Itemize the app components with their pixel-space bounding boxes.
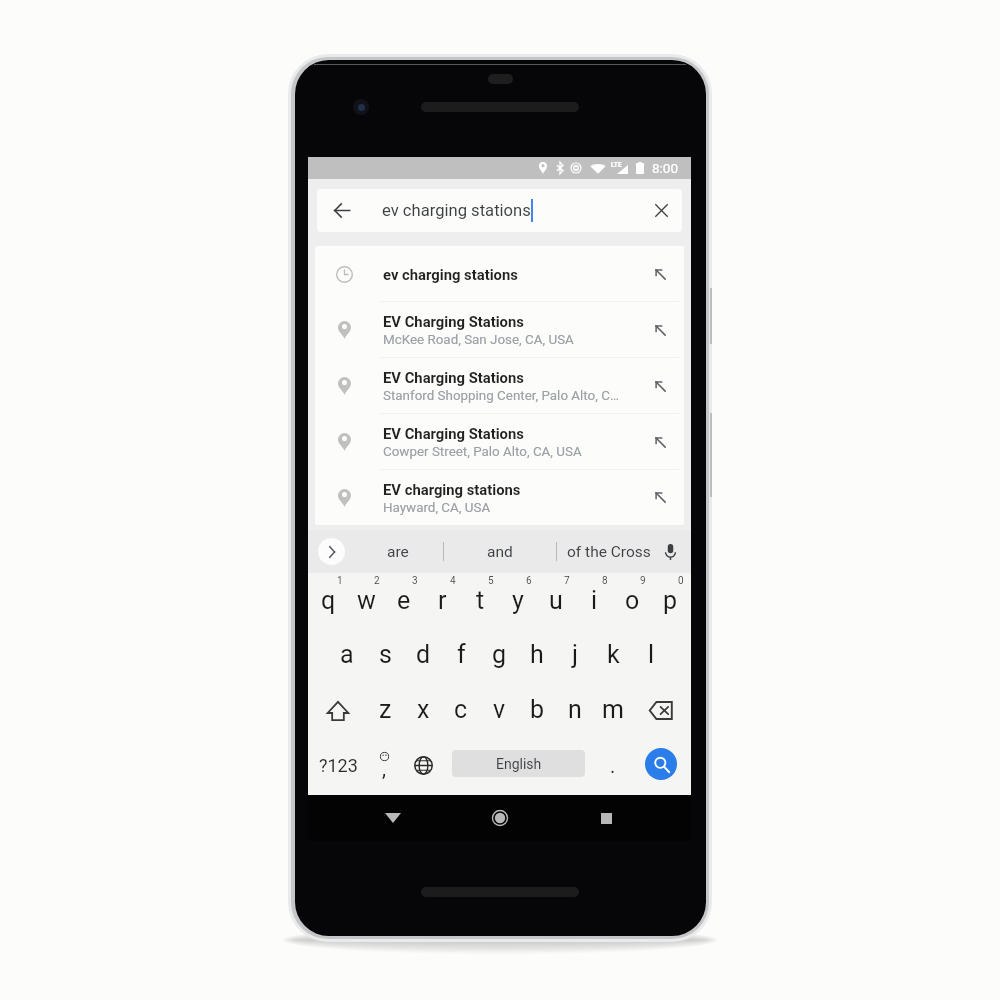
button[interactable]: 4 bbox=[423, 573, 461, 628]
button[interactable]: c bbox=[442, 684, 480, 739]
button[interactable]: 5 bbox=[461, 573, 499, 628]
staticText: l bbox=[648, 640, 655, 669]
button[interactable]: f bbox=[442, 628, 480, 683]
staticText: . bbox=[610, 754, 616, 777]
staticText: t bbox=[476, 586, 485, 615]
staticText: a bbox=[340, 640, 354, 669]
button[interactable]: ?123 bbox=[310, 739, 366, 789]
button[interactable]: of the Cross bbox=[557, 530, 661, 573]
staticText: x bbox=[417, 695, 430, 724]
staticText: 0 bbox=[678, 575, 684, 587]
staticText: i bbox=[591, 586, 598, 615]
staticText: u bbox=[549, 586, 563, 615]
button[interactable]: g bbox=[480, 628, 518, 683]
staticText: 2 bbox=[374, 575, 380, 587]
button[interactable]: x bbox=[404, 684, 442, 739]
button[interactable]: 0 bbox=[651, 573, 689, 628]
staticText: Cowper Street, Palo Alto, CA, USA bbox=[383, 444, 582, 460]
staticText: and bbox=[487, 543, 513, 561]
staticText: EV Charging Stations bbox=[383, 313, 524, 330]
staticText: EV Charging Stations bbox=[383, 369, 524, 386]
button[interactable]: s bbox=[366, 628, 404, 683]
button[interactable]: b bbox=[518, 684, 556, 739]
button[interactable]: n bbox=[556, 684, 594, 739]
staticText: j bbox=[572, 640, 578, 669]
button[interactable]: v bbox=[480, 684, 518, 739]
staticText: f bbox=[457, 640, 466, 669]
staticText: McKee Road, San Jose, CA, USA bbox=[383, 332, 574, 348]
button[interactable]: h bbox=[518, 628, 556, 683]
staticText: m bbox=[602, 695, 624, 724]
button[interactable]: Home bbox=[479, 795, 521, 841]
button[interactable]: Recent apps bbox=[585, 795, 627, 841]
button[interactable]: Back bbox=[372, 795, 414, 841]
staticText: Hayward, CA, USA bbox=[383, 500, 491, 516]
staticText: 8:00 bbox=[652, 160, 679, 176]
button[interactable]: 1 bbox=[310, 573, 347, 628]
button[interactable]: ev charging stations bbox=[315, 246, 684, 302]
staticText: o bbox=[625, 586, 640, 615]
staticText: LTE bbox=[611, 161, 622, 169]
button[interactable]: . bbox=[596, 739, 630, 789]
staticText: w bbox=[357, 586, 376, 615]
button[interactable]: Voice input bbox=[655, 530, 685, 573]
staticText: ?123 bbox=[319, 755, 358, 776]
staticText: 1 bbox=[337, 575, 343, 587]
staticText: g bbox=[492, 640, 507, 669]
staticText: 9 bbox=[640, 575, 646, 587]
button[interactable]: and bbox=[444, 530, 556, 573]
staticText: 6 bbox=[526, 575, 532, 587]
button[interactable]: Change keyboard language bbox=[406, 739, 440, 789]
staticText: q bbox=[321, 586, 336, 615]
staticText: d bbox=[416, 640, 431, 669]
button[interactable]: Search bbox=[641, 739, 681, 789]
button[interactable]: a bbox=[328, 628, 366, 683]
staticText: p bbox=[663, 586, 678, 615]
button[interactable]: EV charging stations bbox=[315, 470, 684, 525]
staticText: e bbox=[397, 586, 411, 615]
staticText: 4 bbox=[450, 575, 456, 587]
staticText: y bbox=[512, 586, 524, 615]
staticText: b bbox=[530, 695, 545, 724]
button[interactable]: l bbox=[632, 628, 670, 683]
button[interactable]: Shift bbox=[310, 684, 366, 739]
button[interactable]: d bbox=[404, 628, 442, 683]
staticText: 8 bbox=[602, 575, 608, 587]
button[interactable]: m bbox=[594, 684, 632, 739]
button[interactable]: EV Charging Stations bbox=[315, 358, 684, 414]
button[interactable]: j bbox=[556, 628, 594, 683]
staticText: z bbox=[379, 695, 392, 724]
button[interactable]: Emoji and comma bbox=[367, 739, 401, 789]
button[interactable]: Expand suggestions bbox=[309, 530, 353, 573]
button[interactable]: EV Charging Stations bbox=[315, 302, 684, 358]
button[interactable]: z bbox=[366, 684, 404, 739]
button[interactable]: Back bbox=[320, 189, 363, 232]
button[interactable]: are bbox=[353, 530, 443, 573]
button[interactable]: Backspace bbox=[632, 684, 689, 739]
staticText: , bbox=[382, 757, 386, 780]
button[interactable]: 6 bbox=[499, 573, 537, 628]
button[interactable]: 3 bbox=[385, 573, 423, 628]
button[interactable]: English bbox=[452, 750, 585, 777]
staticText: ev charging stations bbox=[383, 266, 518, 283]
button[interactable]: 8 bbox=[575, 573, 613, 628]
staticText: s bbox=[379, 640, 392, 669]
staticText: EV Charging Stations bbox=[383, 425, 524, 442]
staticText: Stanford Shopping Center, Palo Alto, C… bbox=[383, 388, 619, 404]
staticText: EV charging stations bbox=[383, 481, 521, 498]
button[interactable]: 2 bbox=[347, 573, 385, 628]
button[interactable]: 9 bbox=[613, 573, 651, 628]
staticText: ev charging stations bbox=[382, 201, 531, 220]
staticText: 7 bbox=[564, 575, 570, 587]
staticText: k bbox=[607, 640, 620, 669]
button[interactable]: EV Charging Stations bbox=[315, 414, 684, 470]
staticText: v bbox=[493, 695, 506, 724]
staticText: n bbox=[568, 695, 582, 724]
button[interactable]: Clear search bbox=[640, 189, 682, 232]
button[interactable]: 7 bbox=[537, 573, 575, 628]
button[interactable]: k bbox=[594, 628, 632, 683]
staticText: 5 bbox=[488, 575, 494, 587]
staticText: are bbox=[387, 543, 409, 561]
staticText: c bbox=[454, 695, 468, 724]
staticText: r bbox=[438, 586, 447, 615]
